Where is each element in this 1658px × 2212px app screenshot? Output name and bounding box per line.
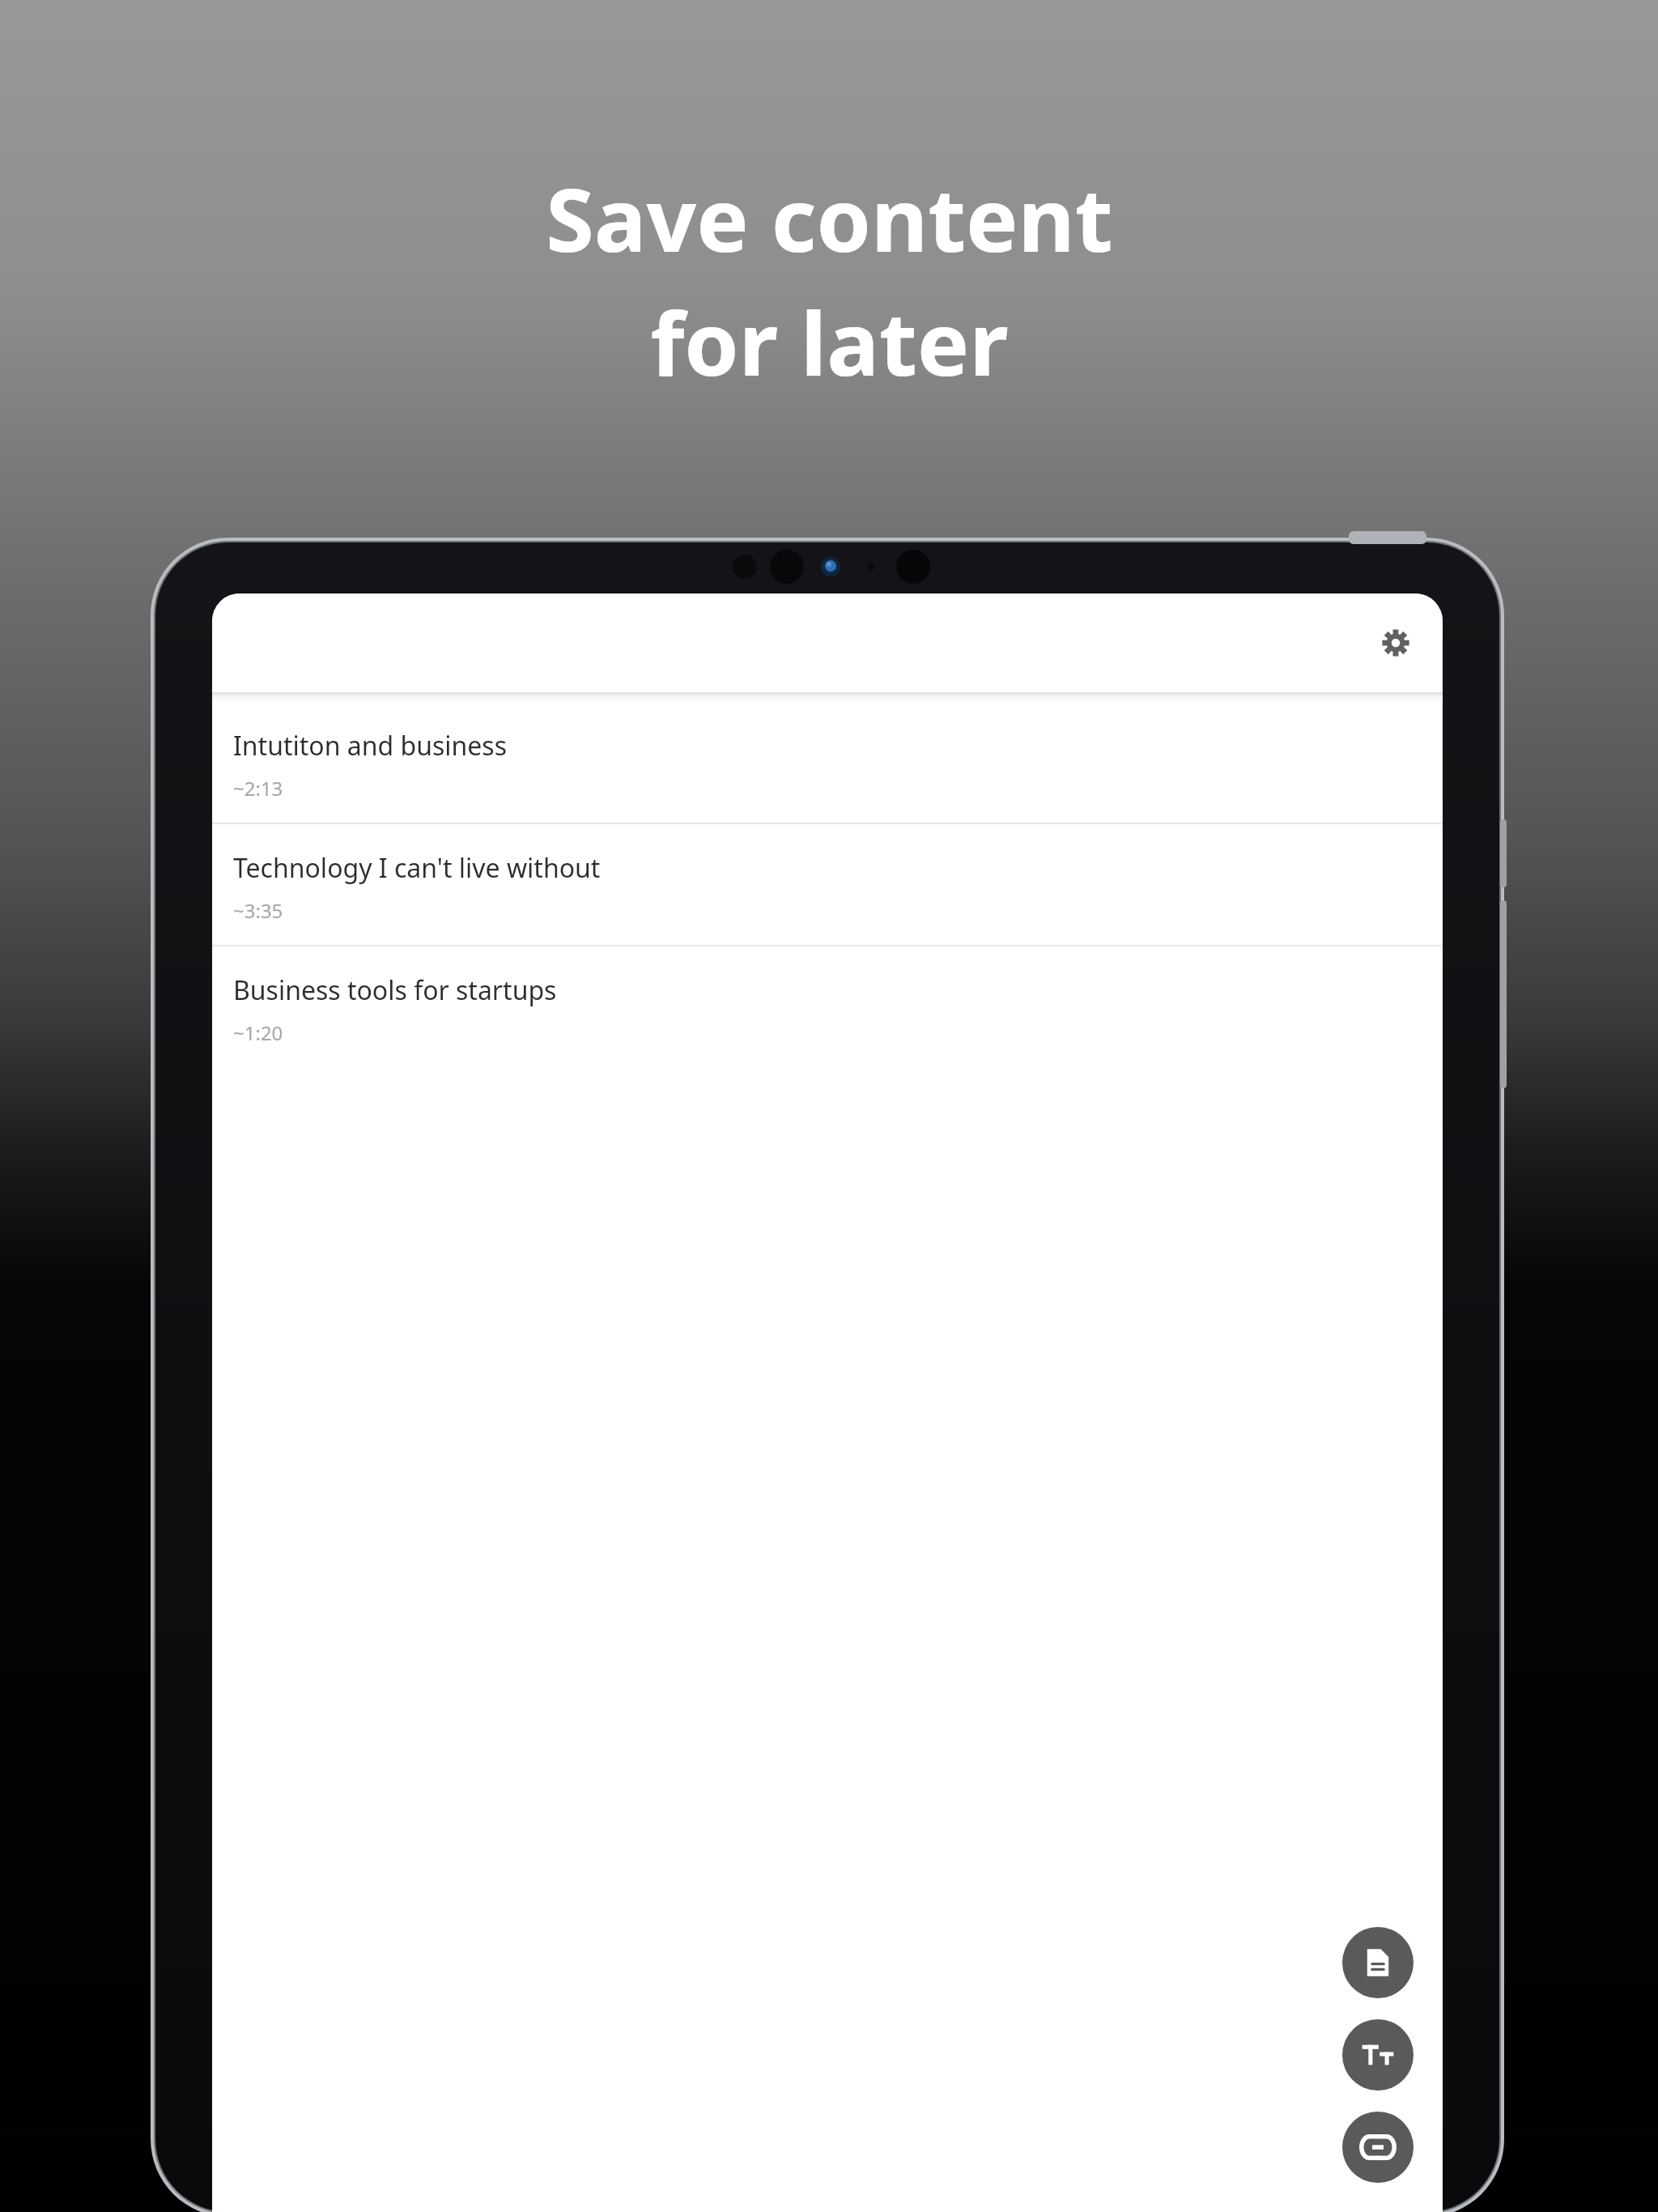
button[interactable]: Settings [1363, 610, 1428, 675]
staticText: Business tools for startups [233, 972, 557, 1008]
staticText: for later [650, 283, 1009, 402]
button[interactable]: Technology I can't live without [212, 824, 1443, 946]
button[interactable]: Add link [1342, 2112, 1414, 2183]
button[interactable]: Add text [1342, 2019, 1414, 2091]
staticText: ~1:20 [233, 1019, 283, 1046]
staticText: ~3:35 [233, 897, 283, 924]
button[interactable]: Intutiton and business [212, 702, 1443, 824]
button[interactable]: Business tools for startups [212, 946, 1443, 1067]
staticText: Technology I can't live without [233, 850, 601, 886]
staticText: Intutiton and business [233, 728, 508, 764]
button[interactable]: Add document [1342, 1927, 1414, 1998]
staticText: Save content [546, 159, 1113, 278]
staticText: ~2:13 [233, 775, 283, 802]
